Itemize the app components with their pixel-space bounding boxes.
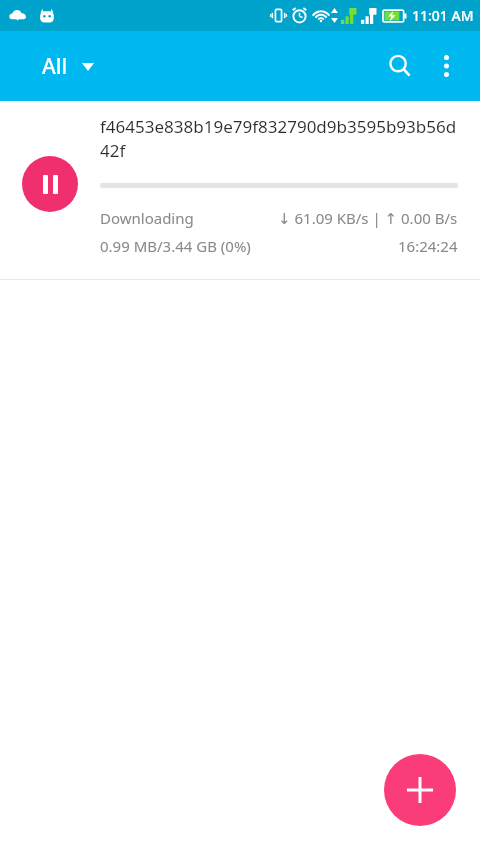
staticText: f46453e838b19e79f832790d9b3595b93b56d42f	[100, 115, 458, 162]
button[interactable]: More options	[424, 44, 468, 88]
staticText: 0.99 MB/3.44 GB (0%)	[100, 236, 251, 256]
staticText: All	[42, 52, 68, 81]
staticText: Downloading	[100, 208, 194, 228]
button[interactable]: All	[34, 46, 102, 87]
button[interactable]: Search	[376, 42, 424, 90]
staticText: 16:24:24	[398, 236, 458, 256]
button[interactable]: Pause download	[22, 156, 78, 212]
button[interactable]: Pause download	[0, 101, 480, 279]
button[interactable]: Add download	[384, 754, 456, 826]
staticText: ↓ 61.09 KB/s | ↑ 0.00 B/s	[278, 208, 458, 228]
staticText: 11:01 AM	[412, 6, 474, 25]
